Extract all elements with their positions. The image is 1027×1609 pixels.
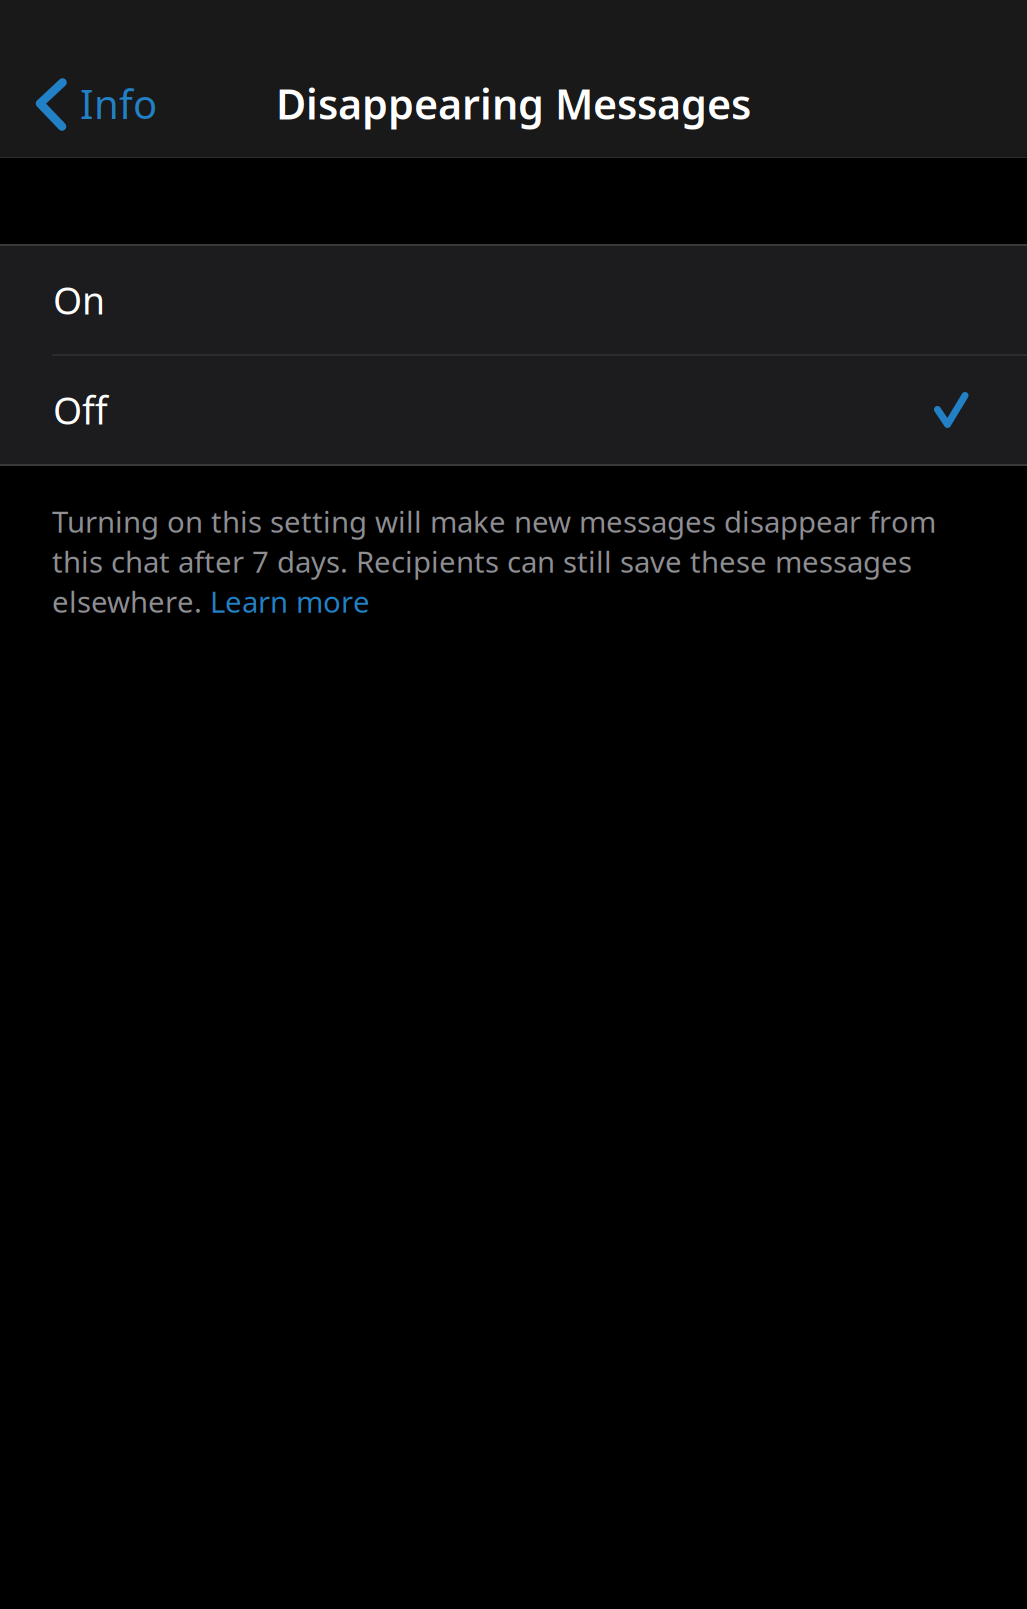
staticText: Info: [80, 77, 157, 130]
button[interactable]: Learn more: [210, 582, 370, 621]
button[interactable]: On: [0, 246, 1027, 354]
staticText: elsewhere.: [52, 582, 210, 621]
staticText: On: [53, 275, 105, 325]
staticText: Learn more: [210, 582, 370, 621]
button[interactable]: Off: [0, 356, 1027, 464]
staticText: Off: [53, 385, 108, 435]
staticText: Disappearing Messages: [276, 76, 751, 131]
button[interactable]: Back to Info: [0, 65, 171, 141]
staticText: Turning on this setting will make new me…: [52, 502, 936, 541]
staticText: this chat after 7 days. Recipients can s…: [52, 542, 912, 581]
